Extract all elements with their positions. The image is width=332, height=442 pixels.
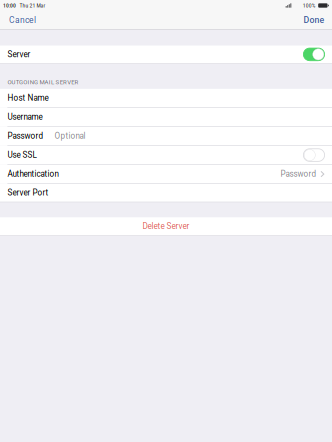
staticText: Use SSL: [7, 150, 36, 160]
button[interactable]: Host Name: [0, 89, 332, 107]
button[interactable]: Server: [0, 45, 332, 63]
staticText: Cancel: [9, 15, 36, 25]
button[interactable]: Use SSL: [0, 146, 332, 164]
staticText: Done: [303, 15, 324, 25]
staticText: Authentication: [7, 169, 58, 179]
staticText: Delete Server: [142, 221, 189, 231]
staticText: Password: [7, 131, 43, 141]
button[interactable]: Done: [296, 11, 332, 29]
staticText: OUTGOING MAIL SERVER: [7, 79, 78, 86]
button[interactable]: Delete Server: [0, 217, 332, 235]
button[interactable]: Username: [0, 108, 332, 126]
staticText: 10:00: [3, 2, 16, 9]
staticText: 100%: [303, 2, 316, 9]
button[interactable]: Cancel: [0, 11, 45, 29]
staticText: Optional: [54, 131, 85, 141]
staticText: Host Name: [7, 93, 48, 103]
staticText: Username: [7, 112, 42, 122]
staticText: Server Port: [7, 188, 48, 197]
button[interactable]: Server Port: [0, 184, 332, 202]
button[interactable]: Password: [0, 127, 332, 145]
staticText: Thu 21 Mar: [19, 2, 45, 9]
staticText: Password: [280, 169, 316, 179]
button[interactable]: Authentication: [0, 165, 332, 183]
staticText: Server: [7, 50, 30, 59]
